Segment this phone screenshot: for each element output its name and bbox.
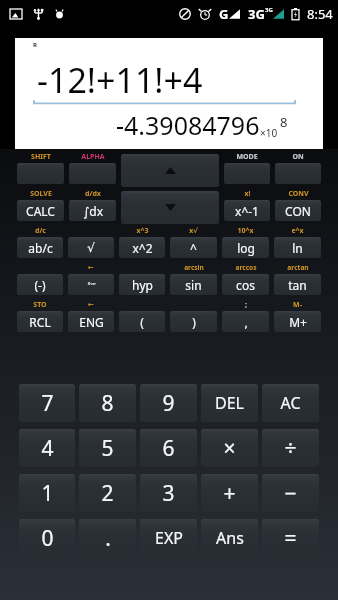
- button[interactable]: (-): [17, 274, 63, 295]
- button[interactable]: Cursor up: [121, 154, 219, 187]
- staticText: CONV: [288, 189, 309, 198]
- staticText: (: [140, 314, 144, 330]
- staticText: ÷: [284, 434, 297, 463]
- staticText: 9: [162, 389, 175, 418]
- staticText: M+: [289, 314, 307, 330]
- button[interactable]: 6: [140, 429, 197, 467]
- staticText: AC: [280, 392, 301, 414]
- button[interactable]: ln: [274, 237, 321, 258]
- button[interactable]: ,: [222, 311, 269, 332]
- staticText: ←: [88, 301, 94, 309]
- button[interactable]: tan: [274, 274, 321, 295]
- staticText: d/c: [35, 226, 46, 235]
- button[interactable]: On: [275, 163, 321, 184]
- staticText: ALPHA: [81, 152, 105, 161]
- button[interactable]: ab/c: [17, 237, 63, 258]
- button[interactable]: √: [68, 237, 114, 258]
- staticText: ,: [244, 314, 248, 330]
- staticText: -4.39084796: [116, 108, 260, 142]
- button[interactable]: 9: [140, 384, 197, 422]
- staticText: ←: [88, 264, 94, 272]
- staticText: +: [223, 479, 236, 508]
- staticText: ×: [223, 434, 236, 463]
- staticText: =: [284, 524, 297, 553]
- button[interactable]: Ans: [201, 519, 258, 557]
- staticText: x^2: [132, 240, 153, 256]
- staticText: x^-1: [235, 203, 259, 219]
- staticText: CON: [285, 203, 311, 219]
- staticText: G: [219, 5, 229, 23]
- staticText: ;: [245, 300, 247, 309]
- button[interactable]: hyp: [119, 274, 165, 295]
- button[interactable]: Shift: [17, 163, 64, 184]
- button[interactable]: =: [262, 519, 319, 557]
- button[interactable]: 0: [19, 519, 75, 557]
- staticText: 6: [162, 434, 175, 463]
- staticText: ln: [292, 240, 303, 256]
- button[interactable]: M+: [274, 311, 321, 332]
- button[interactable]: Alpha: [69, 163, 116, 184]
- staticText: SOLVE: [30, 189, 52, 198]
- button[interactable]: 5: [79, 429, 136, 467]
- button[interactable]: sin: [170, 274, 217, 295]
- button[interactable]: (: [119, 311, 165, 332]
- button[interactable]: DEL: [201, 384, 258, 422]
- button[interactable]: CON: [275, 200, 321, 221]
- button[interactable]: x^-1: [224, 200, 270, 221]
- staticText: hyp: [132, 277, 153, 293]
- staticText: MODE: [236, 152, 258, 161]
- button[interactable]: 1: [19, 474, 75, 512]
- staticText: 4: [41, 434, 54, 463]
- staticText: 2: [101, 479, 114, 508]
- staticText: √: [87, 241, 95, 255]
- button[interactable]: 2: [79, 474, 136, 512]
- staticText: .: [105, 524, 111, 553]
- button[interactable]: ÷: [262, 429, 319, 467]
- button[interactable]: 3: [140, 474, 197, 512]
- button[interactable]: 4: [19, 429, 75, 467]
- button[interactable]: log: [222, 237, 269, 258]
- staticText: 8: [101, 389, 114, 418]
- staticText: log: [237, 240, 255, 256]
- button[interactable]: ∫dx: [69, 200, 116, 221]
- staticText: x√: [189, 226, 198, 235]
- button[interactable]: Mode: [224, 163, 270, 184]
- staticText: tan: [288, 277, 307, 293]
- staticText: ^: [190, 240, 197, 256]
- button[interactable]: ^: [170, 237, 217, 258]
- staticText: arccos: [235, 263, 257, 272]
- button[interactable]: −: [262, 474, 319, 512]
- staticText: arcsin: [184, 263, 204, 272]
- button[interactable]: Cursor down: [121, 191, 219, 224]
- button[interactable]: ×: [201, 429, 258, 467]
- staticText: -12!+11!+4: [37, 57, 203, 103]
- staticText: Ans: [216, 527, 244, 549]
- button[interactable]: .: [79, 519, 136, 557]
- staticText: x^3: [136, 226, 149, 235]
- button[interactable]: AC: [262, 384, 319, 422]
- staticText: −: [284, 479, 297, 508]
- staticText: R: [33, 41, 37, 49]
- staticText: x!: [244, 189, 251, 198]
- button[interactable]: ): [170, 311, 217, 332]
- staticText: cos: [236, 277, 255, 293]
- button[interactable]: ENG: [68, 311, 114, 332]
- staticText: 8: [280, 113, 288, 131]
- staticText: °′″: [87, 280, 96, 290]
- button[interactable]: °′″: [68, 274, 114, 295]
- staticText: STO: [33, 300, 47, 309]
- staticText: 3G: [265, 6, 273, 14]
- button[interactable]: RCL: [17, 311, 63, 332]
- button[interactable]: cos: [222, 274, 269, 295]
- button[interactable]: x^2: [119, 237, 165, 258]
- staticText: arctan: [287, 263, 309, 272]
- staticText: 8:54: [307, 5, 333, 23]
- button[interactable]: 7: [19, 384, 75, 422]
- staticText: 10^x: [237, 226, 254, 235]
- staticText: M-: [293, 300, 302, 309]
- button[interactable]: CALC: [17, 200, 64, 221]
- button[interactable]: EXP: [140, 519, 197, 557]
- button[interactable]: +: [201, 474, 258, 512]
- button[interactable]: 8: [79, 384, 136, 422]
- staticText: 7: [41, 389, 54, 418]
